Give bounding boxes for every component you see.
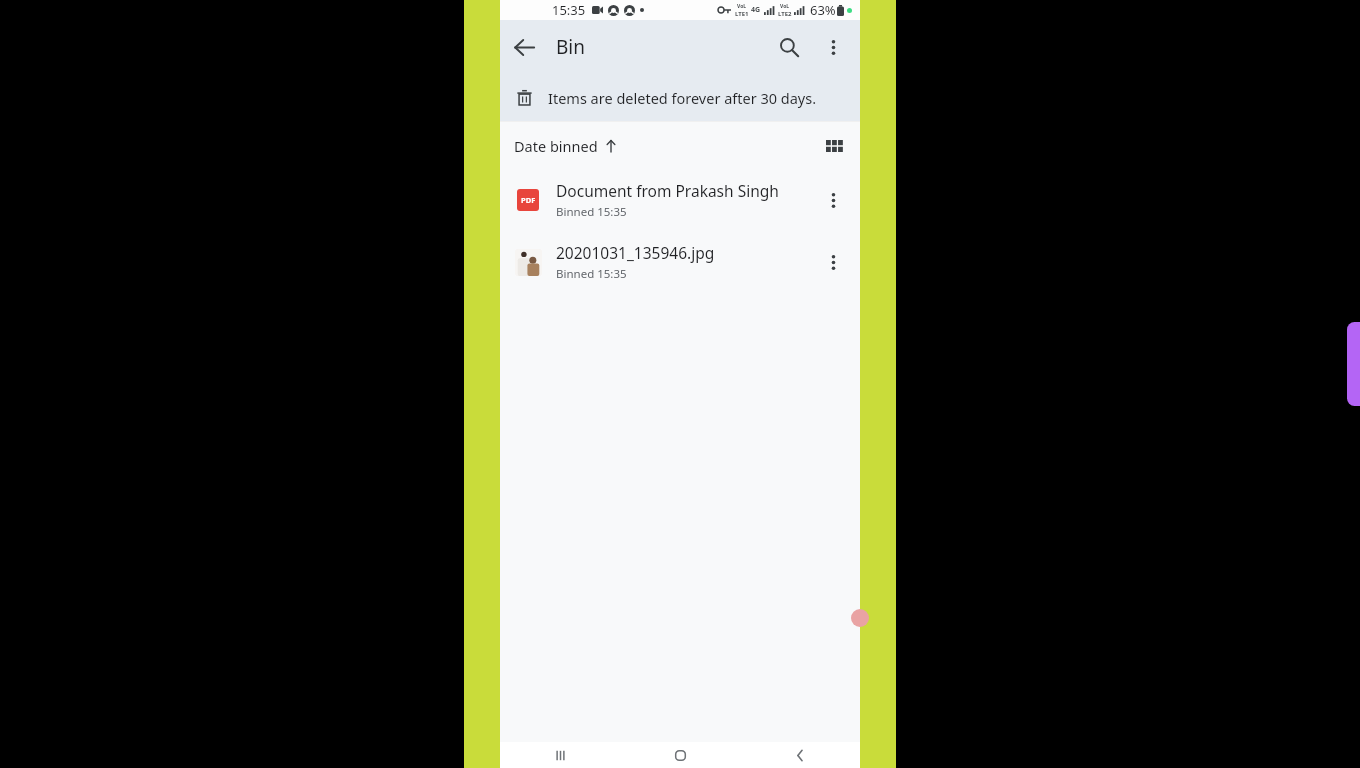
- button[interactable]: Home: [620, 742, 740, 768]
- staticText: Binned 15:35: [556, 266, 627, 282]
- staticText: LTE2: [778, 10, 792, 18]
- staticText: 20201031_135946.jpg: [556, 242, 715, 263]
- staticText: Binned 15:35: [556, 204, 627, 220]
- staticText: 15:35: [552, 1, 586, 19]
- button[interactable]: PDF: [500, 169, 860, 231]
- staticText: Date binned: [514, 136, 598, 156]
- button[interactable]: Grid view: [812, 124, 856, 168]
- staticText: 63%: [810, 1, 836, 19]
- staticText: Bin: [556, 34, 585, 60]
- staticText: Items are deleted forever after 30 days.: [548, 88, 817, 108]
- staticText: PDF: [521, 195, 536, 205]
- button[interactable]: Item options: [810, 177, 856, 223]
- button[interactable]: Date binned: [508, 131, 623, 161]
- staticText: VoL: [780, 3, 790, 10]
- staticText: Document from Prakash Singh: [556, 180, 779, 201]
- button[interactable]: Back: [740, 742, 860, 768]
- staticText: 4G: [751, 5, 761, 15]
- button[interactable]: More options: [812, 26, 854, 68]
- button[interactable]: Item options: [810, 239, 856, 285]
- button[interactable]: 20201031_135946.jpg: [500, 231, 860, 293]
- button[interactable]: Search: [766, 24, 812, 70]
- staticText: LTE1: [735, 10, 749, 18]
- button[interactable]: Back: [500, 23, 548, 71]
- button[interactable]: Recents: [500, 742, 620, 768]
- staticText: VoL: [737, 3, 747, 10]
